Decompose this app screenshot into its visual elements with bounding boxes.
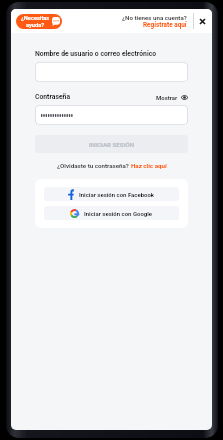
- button[interactable]: [35, 105, 188, 125]
- staticText: Contraseña: [35, 93, 71, 101]
- staticText: ¿Necesitas: [21, 15, 50, 22]
- button[interactable]: INICIAR SESIÓN: [35, 135, 188, 153]
- button[interactable]: Iniciar sesión con Facebook: [44, 187, 179, 201]
- button[interactable]: Cerrar: [194, 11, 210, 31]
- button[interactable]: ¿No tienes una cuenta?: [122, 14, 187, 29]
- staticText: ¿No tienes una cuenta?: [122, 14, 187, 21]
- staticText: ayuda?: [26, 22, 45, 29]
- staticText: Regístrate aquí: [143, 21, 187, 29]
- staticText: Nombre de usuario o correo electrónico: [35, 50, 157, 58]
- button[interactable]: Iniciar sesión con Google: [44, 206, 179, 220]
- staticText: INICIAR SESIÓN: [89, 141, 135, 148]
- button[interactable]: Haz clic aquí: [131, 162, 167, 169]
- staticText: ¿Olvidaste tu contraseña?: [57, 162, 131, 169]
- button[interactable]: Mostrar: [156, 94, 188, 101]
- staticText: Mostrar: [156, 94, 178, 101]
- staticText: Iniciar sesión con Google: [84, 210, 153, 217]
- button[interactable]: ¿Necesitas: [16, 14, 62, 29]
- staticText: Iniciar sesión con Facebook: [79, 191, 155, 198]
- button[interactable]: [35, 62, 188, 82]
